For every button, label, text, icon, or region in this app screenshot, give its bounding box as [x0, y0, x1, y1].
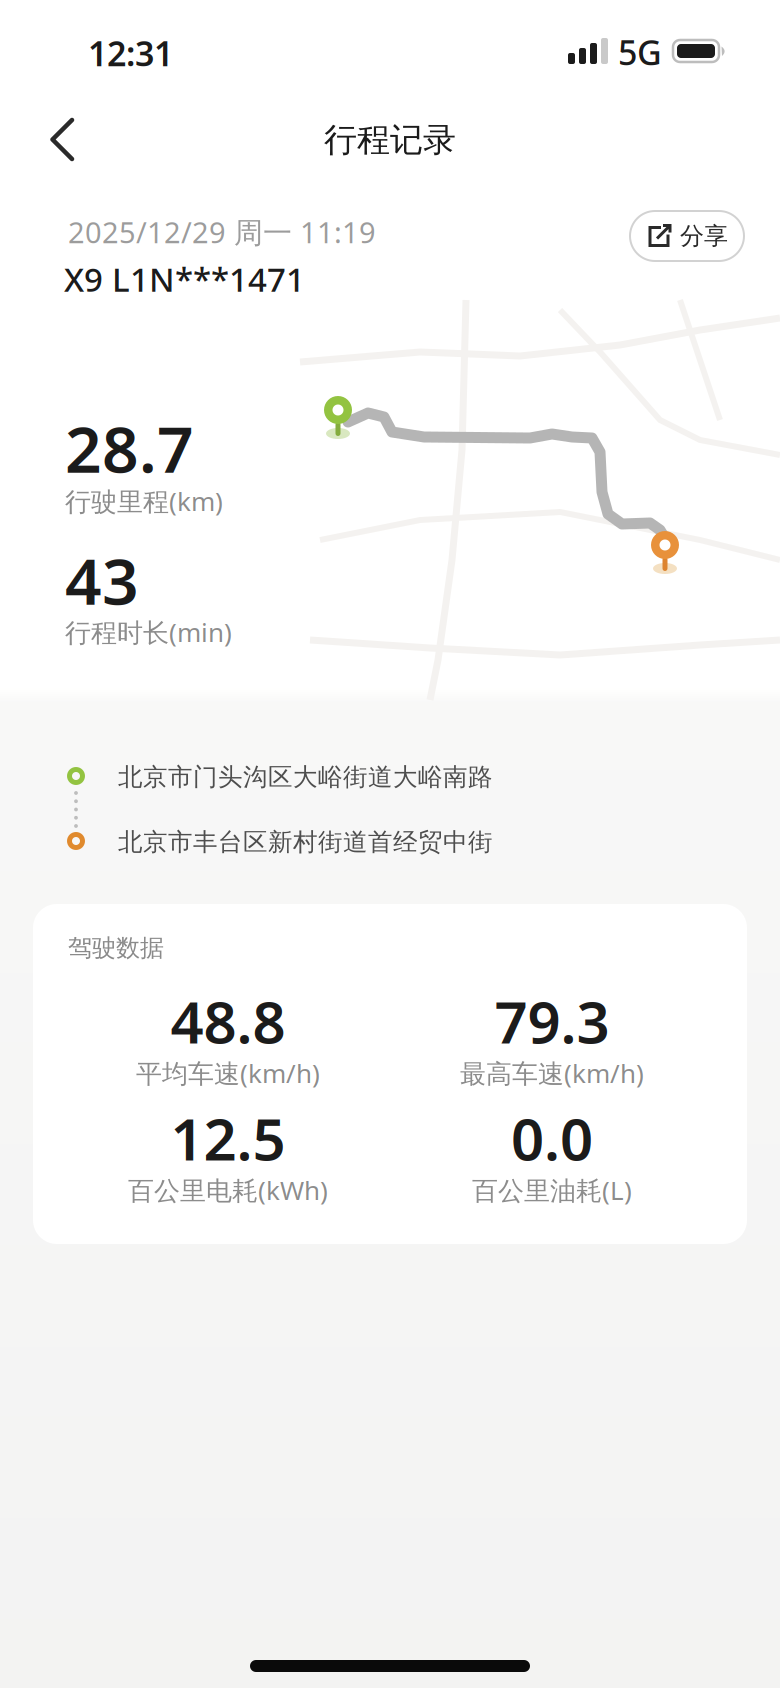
- staticText: 平均车速(km/h): [136, 1056, 320, 1090]
- staticText: 北京市门头沟区大峪街道大峪南路: [118, 762, 493, 792]
- staticText: 28.7: [65, 405, 194, 490]
- staticText: 0.0: [511, 1099, 593, 1176]
- staticText: 2025/12/29 周一 11:19: [68, 213, 376, 251]
- staticText: 79.3: [494, 982, 609, 1059]
- staticText: 北京市丰台区新村街道首经贸中街: [118, 827, 493, 857]
- staticText: 行程时长(min): [65, 615, 232, 649]
- staticText: 43: [65, 537, 139, 622]
- staticText: X9 L1N***1471: [64, 257, 305, 301]
- staticText: 12:31: [88, 30, 173, 76]
- staticText: 12.5: [170, 1099, 285, 1176]
- staticText: 行程记录: [324, 120, 456, 160]
- staticText: 行驶里程(km): [65, 484, 223, 518]
- staticText: 驾驶数据: [68, 933, 164, 963]
- button[interactable]: 分享: [630, 211, 744, 261]
- staticText: 分享: [680, 221, 728, 251]
- staticText: 最高车速(km/h): [460, 1056, 644, 1090]
- staticText: 5G: [618, 29, 662, 75]
- staticText: 48.8: [170, 982, 285, 1059]
- staticText: 百公里电耗(kWh): [128, 1173, 328, 1207]
- button[interactable]: Back: [44, 118, 88, 162]
- staticText: 百公里油耗(L): [472, 1173, 632, 1207]
